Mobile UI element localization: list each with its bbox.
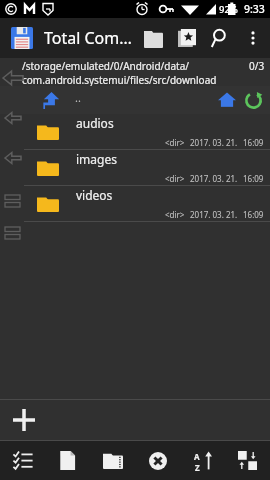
staticText: 2017. 03. 21. [190,209,238,220]
button[interactable]: Close [135,441,180,480]
staticText: .. [75,90,81,105]
staticText: 16:09 [243,137,264,148]
button[interactable]: Sort [180,441,225,480]
staticText: 16:09 [243,173,264,184]
staticText: <dir> [165,209,185,220]
button[interactable]: More options [238,23,268,53]
button[interactable]: Add [8,404,40,436]
staticText: Total Com… [44,27,136,49]
staticText: audios [76,115,114,131]
button[interactable]: Home [214,87,240,113]
button[interactable]: Search [204,21,238,55]
staticText: 0/3 [249,59,265,73]
staticText: 2017. 03. 21. [190,137,238,148]
staticText: <dir> [165,137,185,148]
button[interactable]: New file [45,441,90,480]
staticText: 2017. 03. 21. [190,173,238,184]
button[interactable]: Swap panels [225,441,270,480]
staticText: images [76,151,117,167]
staticText: videos [76,187,113,203]
staticText: Z [195,462,200,471]
staticText: 9:33 [244,2,265,16]
staticText: /storage/emulated/0/Android/data/ [22,59,189,73]
button[interactable]: Bookmarks [170,21,204,55]
button[interactable]: New folder [90,441,135,480]
button[interactable]: Select [0,441,45,480]
button[interactable]: videos [0,186,270,222]
button[interactable]: Up one level [38,87,64,113]
button[interactable]: App icon [8,24,36,52]
staticText: com.android.systemui/files/src/download [22,73,217,86]
button[interactable]: images [0,150,270,186]
button[interactable]: Refresh [240,87,266,113]
staticText: <dir> [165,173,185,184]
staticText: 92% [219,3,238,16]
button[interactable]: Folders [136,21,170,55]
button[interactable]: audios [0,114,270,150]
staticText: 16:09 [243,209,264,220]
staticText: A [194,451,200,462]
